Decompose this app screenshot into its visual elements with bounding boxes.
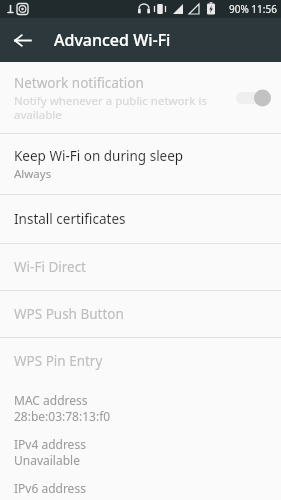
button[interactable]: IPv4 address (0, 428, 281, 472)
button[interactable]: Wi-Fi Direct (0, 244, 281, 290)
staticText: WPS Pin Entry (14, 352, 103, 370)
button[interactable]: Network notification (0, 62, 281, 133)
staticText: IPv4 address (14, 436, 86, 452)
button[interactable]: WPS Pin Entry (0, 338, 281, 384)
staticText: Advanced Wi-Fi (54, 29, 171, 51)
button[interactable]: Back (6, 24, 38, 56)
button[interactable]: IPv6 address (0, 472, 281, 500)
button[interactable]: Keep Wi-Fi on during sleep (0, 134, 281, 194)
button[interactable]: Install certificates (0, 195, 281, 243)
staticText: WPS Push Button (14, 305, 124, 323)
staticText: 28:be:03:78:13:f0 (14, 408, 111, 424)
staticText: IPv6 address (14, 480, 86, 496)
staticText: Always (14, 166, 52, 182)
button[interactable]: MAC address (0, 384, 281, 428)
staticText: Network notification (14, 74, 144, 92)
staticText: MAC address (14, 392, 88, 408)
staticText: 90% 11:56 (229, 2, 277, 16)
button[interactable]: WPS Push Button (0, 291, 281, 337)
button[interactable]: Network notification toggle (235, 87, 271, 109)
staticText: Notify whenever a public network is avai… (14, 93, 229, 122)
staticText: Wi-Fi Direct (14, 258, 86, 276)
staticText: Unavailable (14, 452, 80, 468)
staticText: Keep Wi-Fi on during sleep (14, 147, 184, 165)
staticText: Install certificates (14, 210, 126, 228)
